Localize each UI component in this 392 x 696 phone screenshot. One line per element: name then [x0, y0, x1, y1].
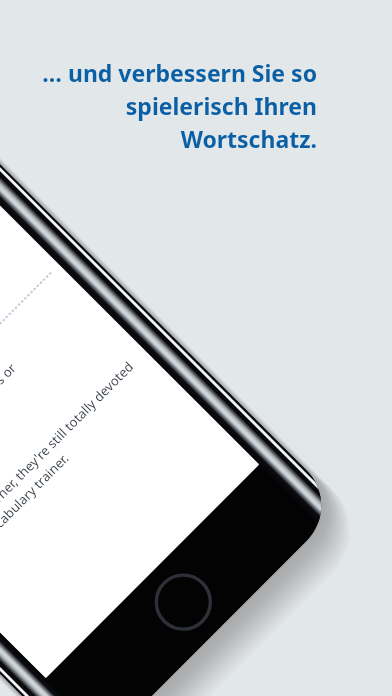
staticText: … und verbessern Sie so spielerisch Ihre…: [20, 57, 317, 155]
